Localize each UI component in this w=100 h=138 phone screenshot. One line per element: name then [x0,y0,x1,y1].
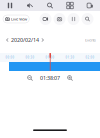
staticText: 01:30 [65,56,74,59]
staticText: 02:00 [85,56,94,59]
staticText: 01:38:07 [40,74,60,82]
staticText: Live View [11,16,27,22]
button[interactable]: Digital zoom [40,0,60,11]
button[interactable]: Live View [3,15,29,23]
staticText: 00:30 [25,56,34,59]
button[interactable]: Record [39,13,51,25]
button[interactable]: Events [85,37,96,43]
button[interactable]: Next day [39,35,46,44]
button[interactable]: Previous day [4,35,11,44]
staticText: 00:00 [5,56,14,59]
button[interactable]: Zoom in [65,73,75,83]
staticText: 01:00 [45,56,54,59]
button[interactable]: Capture [53,13,65,25]
button[interactable]: Search [81,13,93,25]
button[interactable]: Layout [60,0,80,11]
staticText: Events [85,37,96,43]
staticText: 2020/02/14 [11,36,39,44]
button[interactable]: Pause [0,0,20,11]
button[interactable]: Snapshot [80,0,100,11]
button[interactable]: Pause playback [67,13,79,25]
button[interactable]: Zoom out [25,73,35,83]
button[interactable]: Mute [20,0,40,11]
